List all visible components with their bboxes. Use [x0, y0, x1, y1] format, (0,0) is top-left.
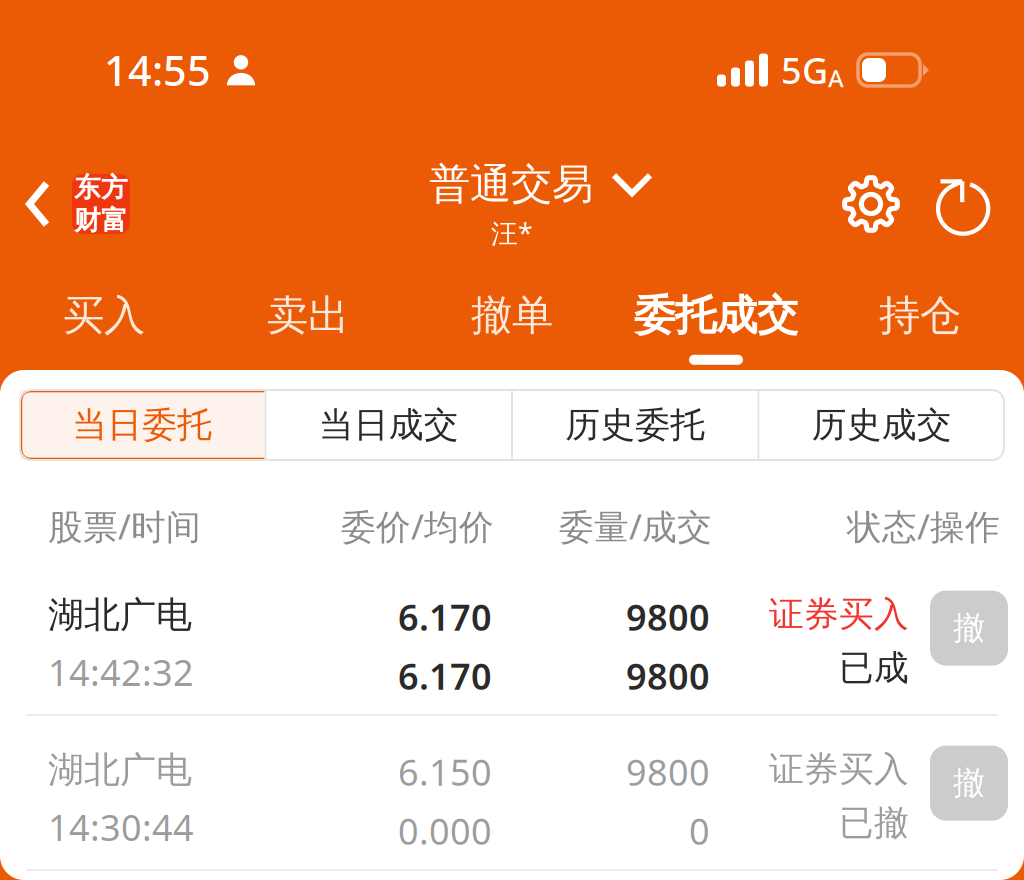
staticText: 6.170: [398, 593, 492, 641]
button[interactable]: 历史委托: [513, 390, 757, 460]
staticText: 卖出: [267, 290, 349, 341]
staticText: 已成: [839, 647, 909, 689]
staticText: 历史成交: [812, 404, 952, 446]
staticText: 0: [689, 807, 710, 855]
staticText: 6.170: [398, 652, 492, 700]
button[interactable]: 撤单: [410, 268, 614, 370]
staticText: 14:42:32: [48, 648, 194, 696]
staticText: 当日委托: [72, 404, 212, 446]
staticText: 普通交易: [429, 159, 593, 210]
staticText: 历史委托: [565, 404, 705, 446]
staticText: 9800: [626, 652, 710, 700]
staticText: 撤单: [471, 290, 553, 341]
staticText: 富: [101, 204, 128, 237]
staticText: 5G: [781, 46, 828, 94]
button[interactable]: 历史成交: [759, 390, 1004, 460]
staticText: 14:30:44: [48, 803, 194, 851]
button[interactable]: 普通交易: [173, 157, 851, 211]
staticText: 已撤: [839, 802, 909, 844]
button[interactable]: 湖北广电: [0, 716, 1024, 869]
staticText: 汪*: [491, 215, 533, 251]
staticText: 股票/时间: [48, 503, 201, 549]
staticText: 湖北广电: [48, 748, 192, 792]
staticText: 9800: [626, 593, 710, 641]
staticText: 6.150: [398, 748, 492, 796]
button[interactable]: Back: [0, 152, 142, 256]
staticText: 财: [74, 204, 101, 237]
staticText: 方: [101, 171, 128, 204]
staticText: 撤: [953, 763, 985, 803]
button[interactable]: Refresh: [922, 161, 1008, 247]
button[interactable]: Settings: [828, 161, 914, 247]
button[interactable]: 撤: [930, 591, 1008, 666]
button[interactable]: 买入: [2, 268, 206, 370]
button[interactable]: 湖北广电: [0, 561, 1024, 714]
staticText: 委量/成交: [559, 503, 712, 549]
staticText: 委价/均价: [341, 503, 494, 549]
staticText: 撤: [953, 608, 985, 648]
staticText: 0.000: [398, 807, 492, 855]
staticText: 9800: [626, 748, 710, 796]
button[interactable]: 持仓: [818, 268, 1022, 370]
staticText: 14:55: [104, 43, 211, 97]
staticText: 状态/操作: [847, 503, 1000, 549]
staticText: 买入: [63, 290, 145, 341]
button[interactable]: 委托成交: [614, 268, 818, 370]
staticText: 证券买入: [769, 748, 909, 791]
staticText: 东: [74, 171, 101, 204]
button[interactable]: 撤: [930, 746, 1008, 821]
staticText: 证券买入: [769, 593, 909, 636]
staticText: 湖北广电: [48, 593, 192, 637]
staticText: 持仓: [879, 290, 961, 341]
button[interactable]: 卖出: [206, 268, 410, 370]
button[interactable]: 当日成交: [266, 390, 511, 460]
button[interactable]: 当日委托: [20, 390, 264, 460]
staticText: 当日成交: [319, 404, 459, 446]
staticText: 委托成交: [634, 290, 798, 341]
staticText: A: [828, 62, 844, 94]
